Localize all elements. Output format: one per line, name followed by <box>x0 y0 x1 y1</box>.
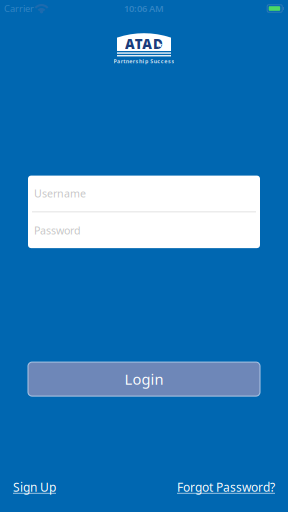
staticText: Partnership Success <box>114 58 174 65</box>
staticText: Login <box>124 369 163 389</box>
staticText: Carrier <box>4 2 34 15</box>
staticText: Sign Up <box>13 479 56 495</box>
staticText: 10:06 AM <box>124 2 164 15</box>
button[interactable]: Login <box>28 362 260 396</box>
button[interactable]: Sign Up <box>13 479 56 495</box>
staticText: Username <box>34 186 86 200</box>
staticText: ATAD <box>125 35 163 53</box>
button[interactable]: Forgot Password? <box>177 479 275 495</box>
staticText: Forgot Password? <box>177 479 275 495</box>
staticText: Password <box>34 223 81 237</box>
